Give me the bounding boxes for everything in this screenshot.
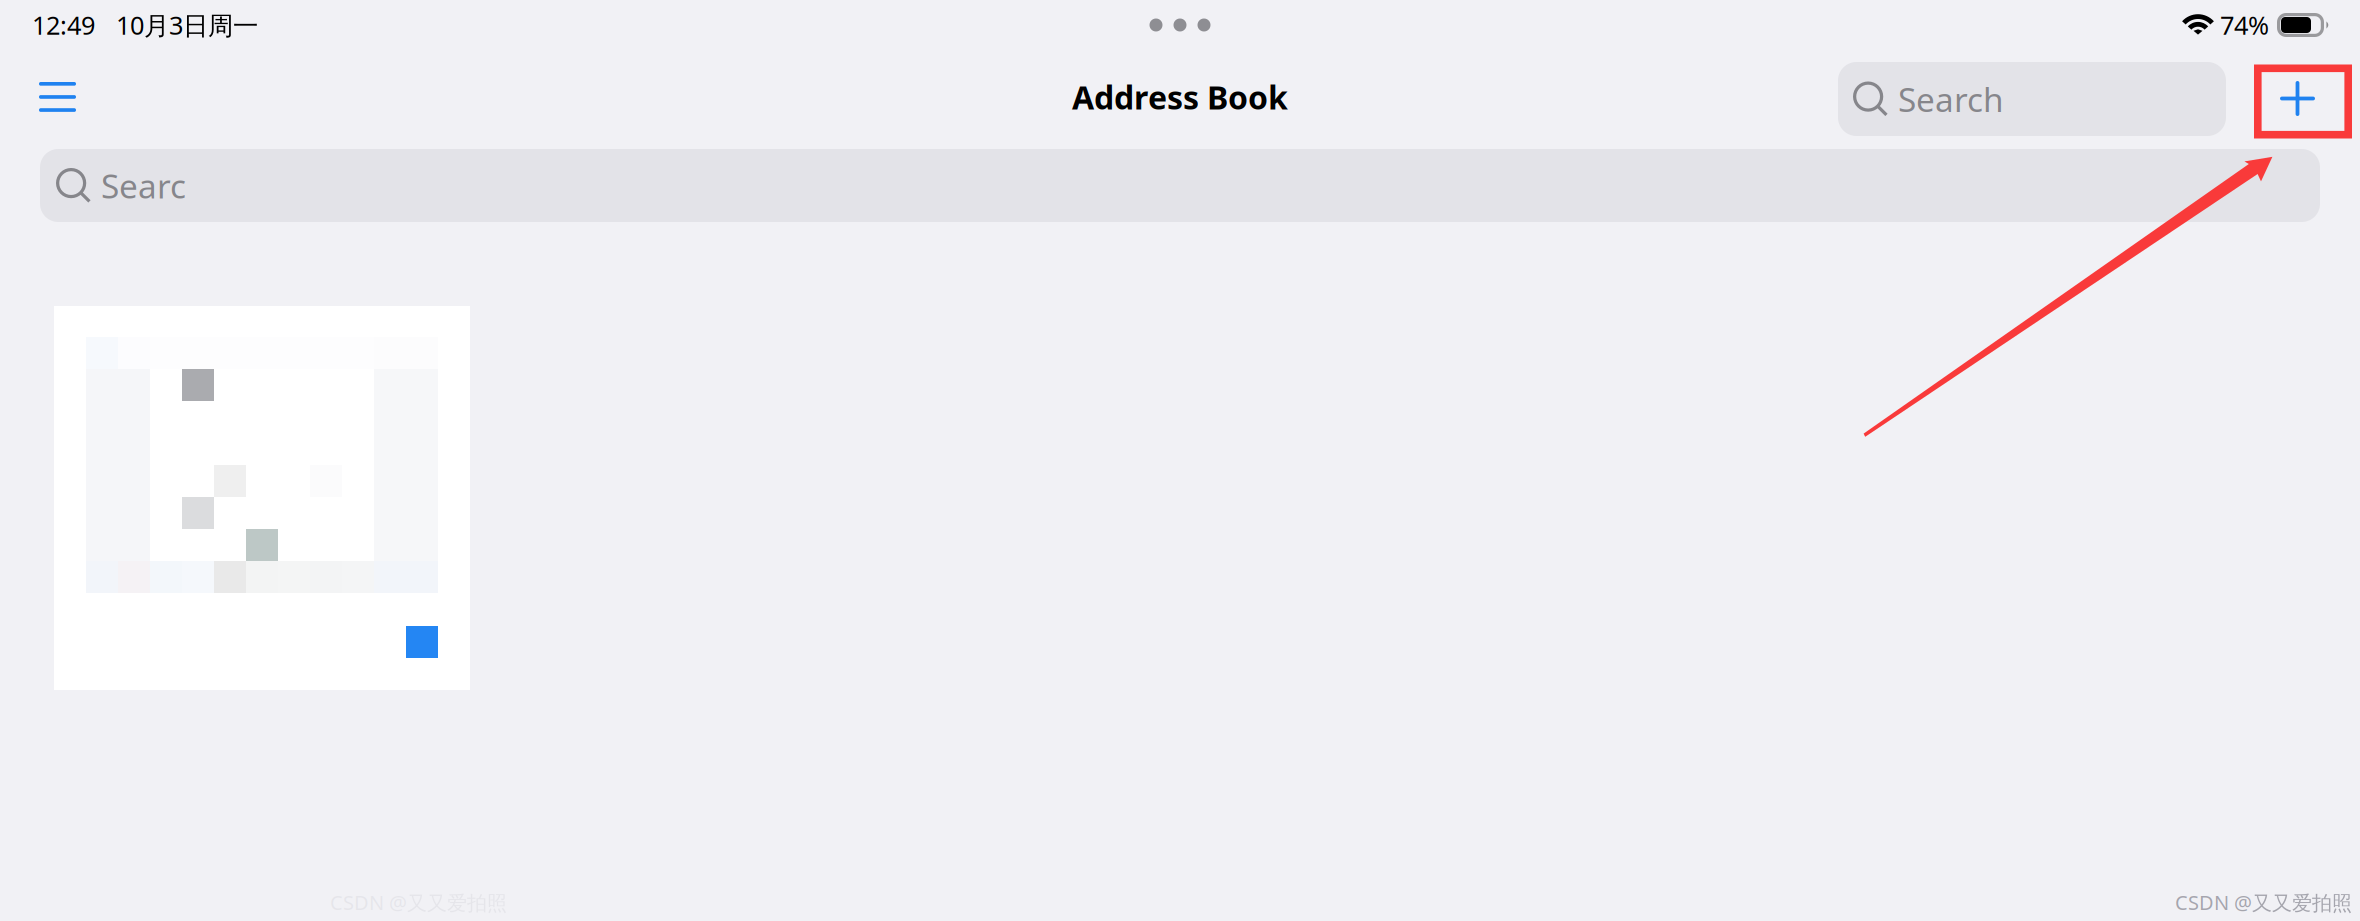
- staticText: CSDN @又又爱拍照: [330, 889, 507, 916]
- staticText: 74%: [2220, 8, 2269, 42]
- staticText: Search: [1898, 77, 2004, 121]
- button[interactable]: Menu: [21, 62, 94, 132]
- button[interactable]: Search: [40, 149, 2320, 222]
- staticText: CSDN @又又爱拍照: [2175, 889, 2352, 916]
- staticText: Address Book: [1072, 76, 1288, 118]
- button[interactable]: Search: [1838, 62, 2226, 136]
- staticText: Search: [101, 163, 207, 208]
- staticText: 12:49 10月3日周一: [32, 8, 258, 42]
- button[interactable]: Add Contact: [2249, 62, 2346, 135]
